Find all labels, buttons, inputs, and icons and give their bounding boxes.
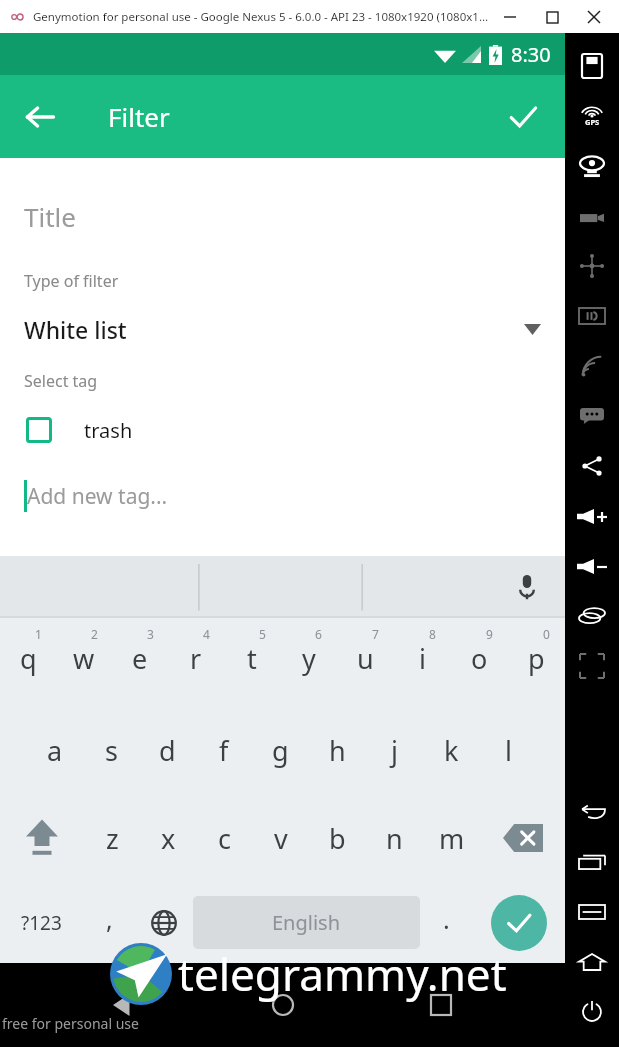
button[interactable]: Screenshot — [565, 41, 619, 91]
button[interactable]: Backspace — [480, 794, 565, 882]
button[interactable]: White list — [24, 310, 541, 348]
button[interactable]: 7 — [337, 618, 394, 706]
staticText: g — [272, 732, 289, 769]
button[interactable]: Video — [565, 191, 619, 241]
staticText: English — [272, 909, 341, 936]
button[interactable]: 8 — [394, 618, 451, 706]
staticText: k — [444, 732, 459, 769]
staticText: q — [20, 640, 37, 677]
button[interactable]: trash — [24, 408, 541, 452]
staticText: Select tag — [24, 370, 98, 392]
staticText: 9 — [486, 626, 493, 642]
staticText: . — [443, 902, 450, 936]
staticText: ?123 — [21, 910, 62, 936]
staticText: y — [302, 640, 316, 677]
staticText: 2 — [91, 626, 98, 642]
button[interactable]: z — [84, 794, 140, 882]
button[interactable]: Change language — [135, 882, 193, 963]
button[interactable]: Recents — [565, 837, 619, 887]
button[interactable]: Volume down — [565, 541, 619, 591]
button[interactable]: g — [252, 706, 309, 794]
button[interactable]: j — [366, 706, 423, 794]
button[interactable]: 4 — [168, 618, 224, 706]
staticText: trash — [84, 417, 133, 444]
staticText: free for personal use — [2, 1014, 139, 1033]
staticText: h — [329, 732, 346, 769]
staticText: 0 — [543, 626, 550, 642]
staticText: 6 — [315, 626, 322, 642]
staticText: 1 — [35, 626, 42, 642]
button[interactable]: Fullscreen — [565, 641, 619, 691]
button[interactable]: Power — [565, 987, 619, 1037]
button[interactable]: Home — [565, 937, 619, 987]
button[interactable]: x — [140, 794, 196, 882]
button[interactable]: GPS — [565, 91, 619, 141]
button[interactable]: Save filter — [493, 87, 553, 147]
button[interactable]: f — [195, 706, 252, 794]
button[interactable]: l — [480, 706, 537, 794]
staticText: 5 — [259, 626, 266, 642]
button[interactable]: d — [139, 706, 195, 794]
button[interactable]: Back — [8, 85, 72, 149]
button[interactable]: Move — [565, 241, 619, 291]
button[interactable]: Back — [89, 970, 159, 1040]
staticText: i — [419, 640, 426, 677]
button[interactable]: Voice input — [505, 565, 549, 609]
button[interactable]: . — [420, 882, 472, 963]
button[interactable]: 1 — [0, 618, 56, 706]
button[interactable]: 3 — [112, 618, 168, 706]
button[interactable]: n — [366, 794, 423, 882]
staticText: GPS — [585, 117, 600, 127]
button[interactable]: Rotate — [565, 591, 619, 641]
button[interactable]: Recent apps — [406, 970, 476, 1040]
staticText: Add new tag... — [27, 482, 168, 511]
button[interactable]: Maximize — [531, 2, 573, 32]
button[interactable]: Identifiers — [565, 291, 619, 341]
button[interactable]: c — [196, 794, 252, 882]
button[interactable]: Network — [565, 341, 619, 391]
button[interactable]: Add new tag... — [24, 476, 541, 516]
staticText: telegrammy.net — [178, 944, 507, 1004]
button[interactable]: v — [252, 794, 309, 882]
button[interactable]: Minimize — [489, 2, 531, 32]
button[interactable]: 0 — [508, 618, 565, 706]
button[interactable]: m — [423, 794, 480, 882]
button[interactable]: 5 — [224, 618, 280, 706]
button[interactable]: h — [309, 706, 366, 794]
button[interactable]: Camera — [565, 141, 619, 191]
staticText: r — [190, 640, 202, 677]
button[interactable]: k — [423, 706, 480, 794]
staticText: b — [329, 820, 346, 857]
staticText: 8 — [429, 626, 436, 642]
button[interactable]: Back — [565, 787, 619, 837]
button[interactable]: Enter — [472, 882, 565, 963]
staticText: 8:30 — [511, 41, 551, 68]
other: Open filter type dropdown — [524, 324, 541, 335]
button[interactable]: English — [193, 896, 420, 949]
button[interactable]: Shift — [0, 794, 84, 882]
button[interactable]: Title — [24, 194, 541, 238]
staticText: , — [106, 902, 113, 936]
staticText: 4 — [203, 626, 210, 642]
staticText: n — [386, 820, 403, 857]
staticText: Type of filter — [24, 270, 119, 292]
staticText: c — [218, 820, 231, 857]
staticText: d — [159, 732, 176, 769]
staticText: x — [161, 820, 176, 857]
staticText: Filter — [108, 99, 170, 134]
button[interactable]: Menu — [565, 887, 619, 937]
button[interactable]: , — [83, 882, 135, 963]
button[interactable]: 6 — [280, 618, 337, 706]
button[interactable]: 2 — [56, 618, 112, 706]
button[interactable]: Home — [248, 970, 318, 1040]
button[interactable]: Share — [565, 441, 619, 491]
button[interactable]: SMS — [565, 391, 619, 441]
button[interactable]: Volume up — [565, 491, 619, 541]
button[interactable]: a — [27, 706, 83, 794]
button[interactable]: b — [309, 794, 366, 882]
button[interactable]: ?123 — [0, 882, 83, 963]
button[interactable]: s — [83, 706, 139, 794]
button[interactable]: Close — [573, 2, 615, 32]
button[interactable]: 9 — [451, 618, 508, 706]
staticText: 7 — [372, 626, 379, 642]
